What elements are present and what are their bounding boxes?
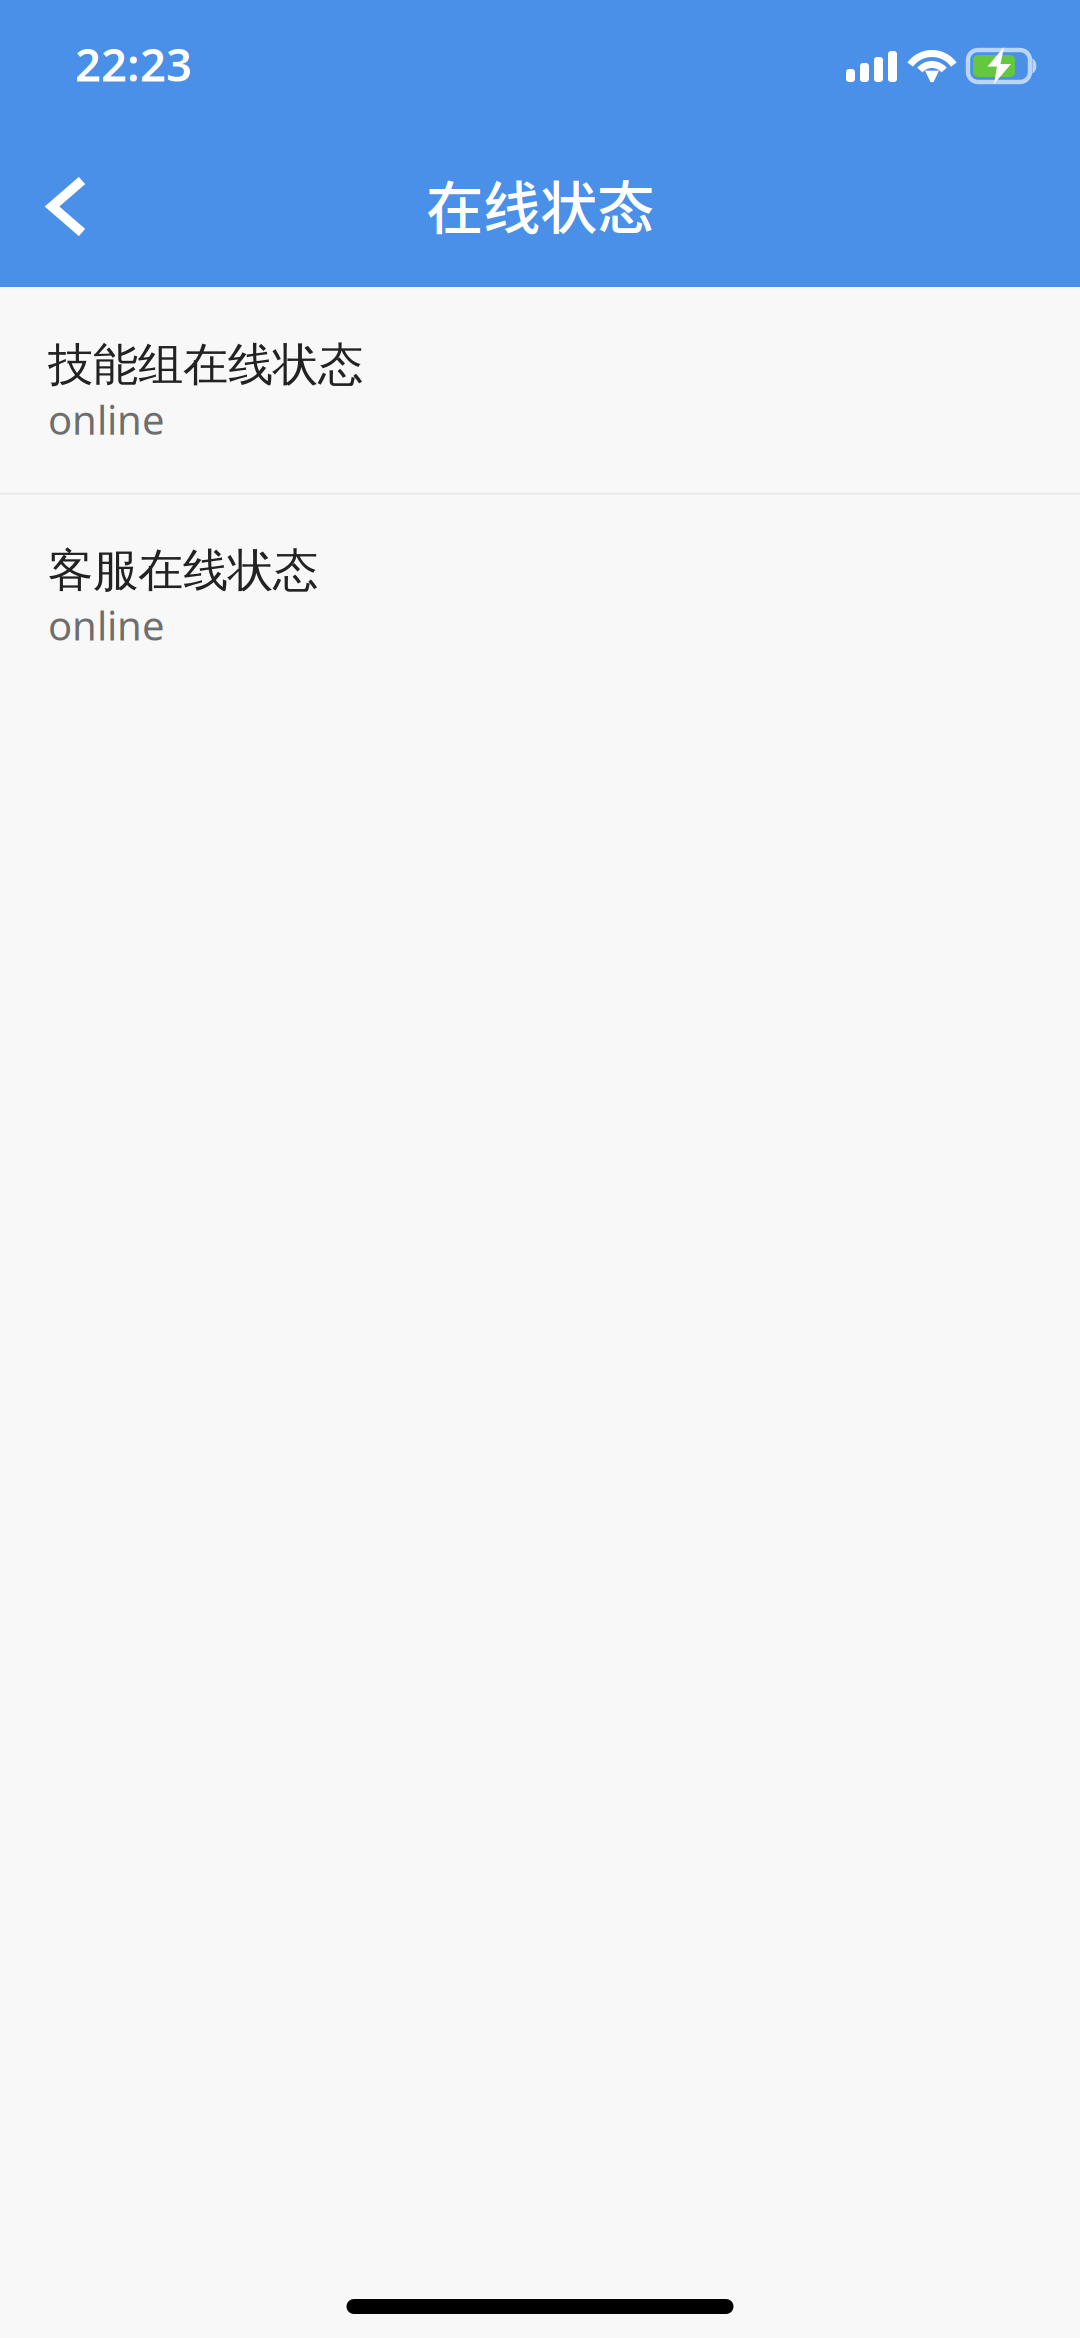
staticText: online xyxy=(48,598,165,652)
button[interactable]: 客服在线状态 xyxy=(0,495,1080,699)
staticText: 客服在线状态 xyxy=(48,543,318,598)
button[interactable]: 技能组在线状态 xyxy=(0,287,1080,493)
staticText: 在线状态 xyxy=(426,162,654,245)
staticText: online xyxy=(48,393,165,446)
button[interactable]: Back xyxy=(12,151,122,267)
staticText: 22:23 xyxy=(75,34,192,94)
staticText: 技能组在线状态 xyxy=(48,337,363,393)
